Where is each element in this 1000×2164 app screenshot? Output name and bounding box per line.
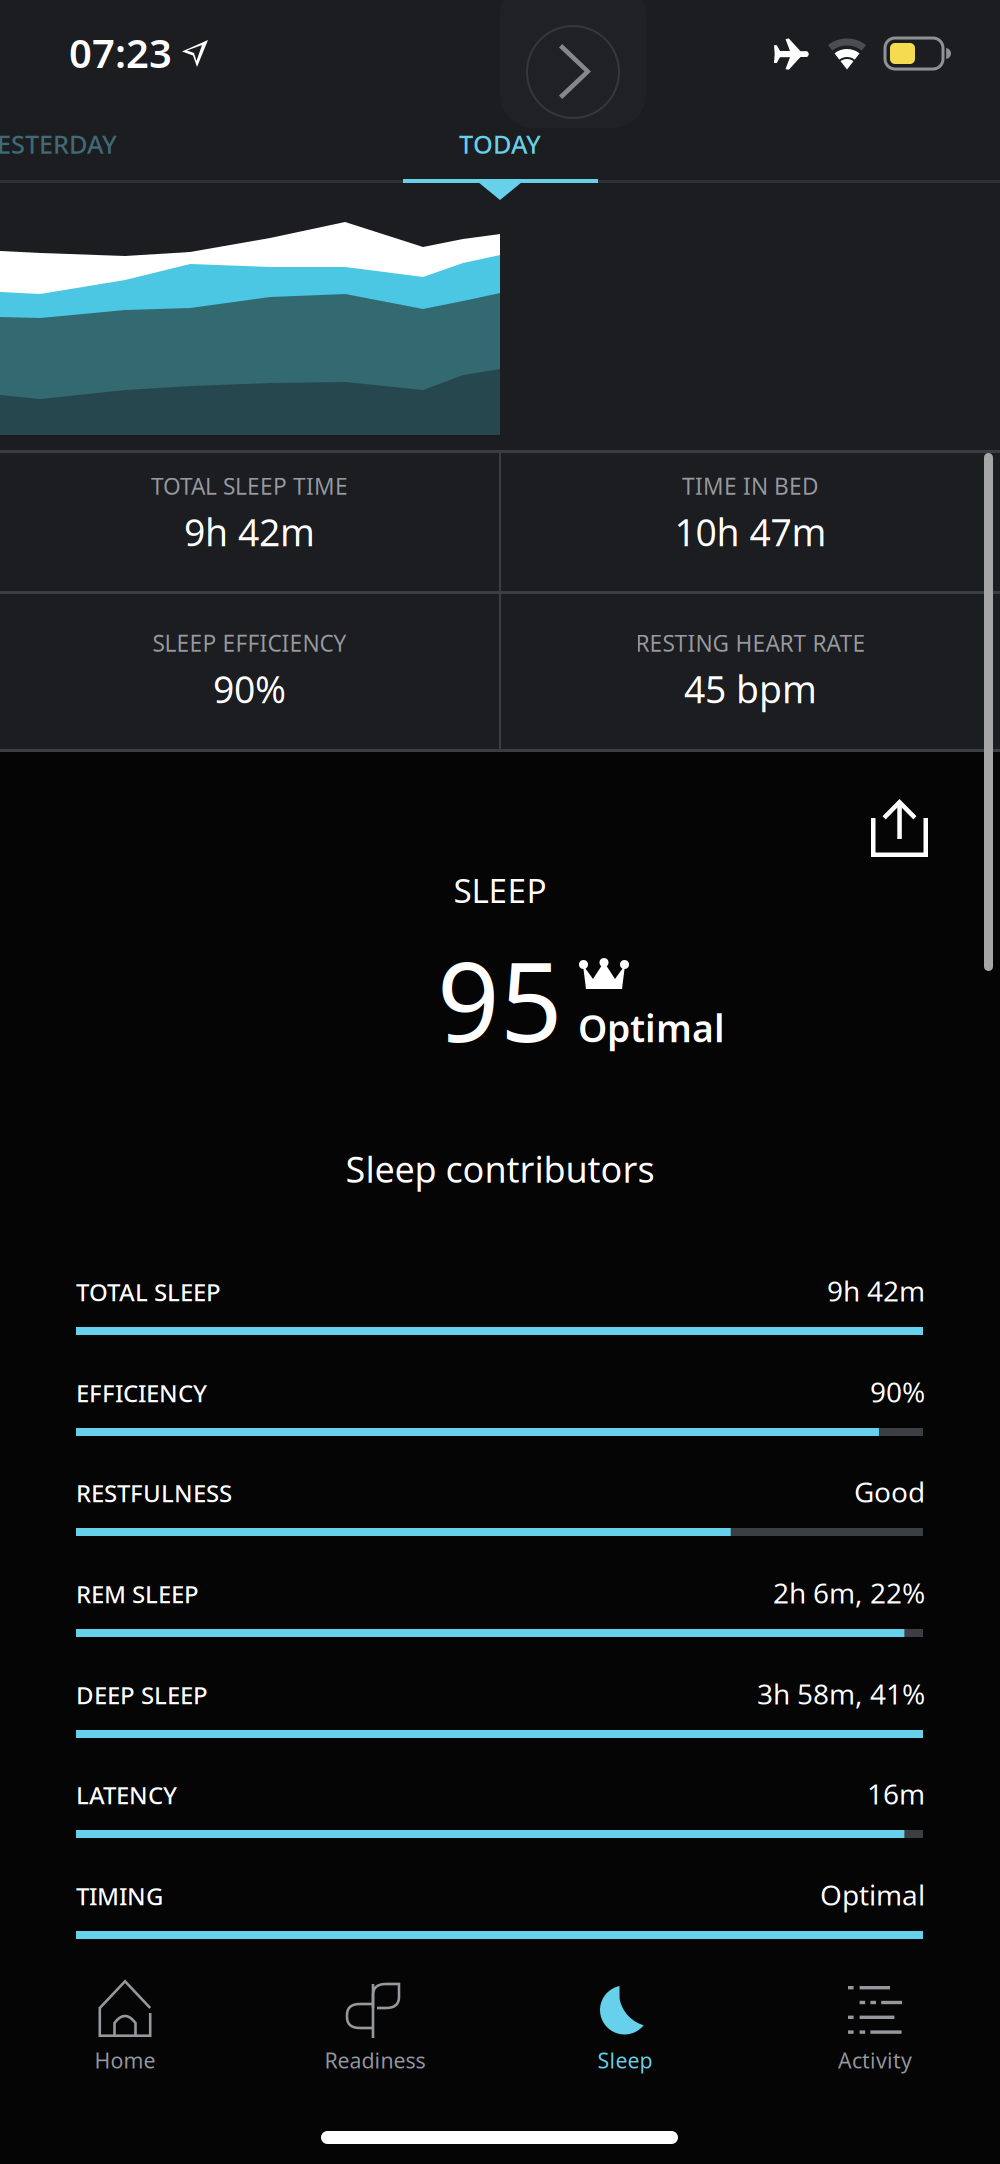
staticText: Activity <box>838 2046 912 2074</box>
staticText: Optimal <box>820 1876 925 1913</box>
staticText: TOTAL SLEEP <box>76 1276 221 1308</box>
staticText: 2h 6m, 22% <box>773 1574 925 1611</box>
staticText: 95 <box>437 927 563 1072</box>
staticText: SLEEP <box>453 868 546 912</box>
staticText: Readiness <box>324 2046 425 2074</box>
staticText: Home <box>94 2046 155 2074</box>
staticText: 90% <box>213 664 286 714</box>
button[interactable]: REM SLEEP <box>76 1566 923 1652</box>
staticText: 90% <box>870 1373 925 1410</box>
button[interactable]: Sleep <box>500 1955 750 2164</box>
button[interactable]: Home <box>0 1955 250 2164</box>
button[interactable]: TODAY <box>400 121 600 167</box>
staticText: TIMING <box>76 1880 163 1912</box>
staticText: TODAY <box>459 127 541 161</box>
button[interactable]: EFFICIENCY <box>76 1365 923 1451</box>
staticText: 10h 47m <box>674 507 826 557</box>
staticText: TIME IN BED <box>682 471 819 501</box>
button[interactable]: SLEEP EFFICIENCY <box>0 594 499 751</box>
staticText: 07:23 <box>69 26 172 79</box>
staticText: Good <box>854 1473 925 1510</box>
staticText: SLEEP EFFICIENCY <box>152 628 346 658</box>
staticText: 9h 42m <box>827 1272 925 1309</box>
button[interactable]: RESTFULNESS <box>76 1465 923 1551</box>
button[interactable]: LATENCY <box>76 1767 923 1853</box>
staticText: 16m <box>867 1775 925 1812</box>
button[interactable]: Readiness <box>250 1955 500 2164</box>
staticText: Sleep <box>597 2046 652 2074</box>
staticText: LATENCY <box>76 1779 177 1811</box>
staticText: 45 bpm <box>684 664 817 714</box>
button[interactable]: TIMING <box>76 1868 923 1954</box>
staticText: YESTERDAY <box>0 127 117 161</box>
button[interactable]: TOTAL SLEEP TIME <box>0 453 499 592</box>
button[interactable]: Share <box>871 799 928 857</box>
staticText: REM SLEEP <box>76 1578 199 1610</box>
staticText: Sleep contributors <box>345 1145 654 1193</box>
staticText: 9h 42m <box>184 507 315 557</box>
staticText: 3h 58m, 41% <box>757 1675 925 1712</box>
button[interactable]: Activity <box>750 1955 1000 2164</box>
staticText: Optimal <box>578 1003 725 1053</box>
button[interactable]: RESTING HEART RATE <box>501 594 1000 751</box>
button[interactable]: DEEP SLEEP <box>76 1667 923 1753</box>
staticText: DEEP SLEEP <box>76 1679 208 1711</box>
button[interactable]: TOTAL SLEEP <box>76 1264 923 1350</box>
button[interactable]: TIME IN BED <box>501 453 1000 592</box>
staticText: TOTAL SLEEP TIME <box>151 471 348 501</box>
staticText: RESTFULNESS <box>76 1477 232 1509</box>
staticText: RESTING HEART RATE <box>635 628 865 658</box>
button[interactable]: YESTERDAY <box>0 121 142 167</box>
staticText: EFFICIENCY <box>76 1377 207 1409</box>
